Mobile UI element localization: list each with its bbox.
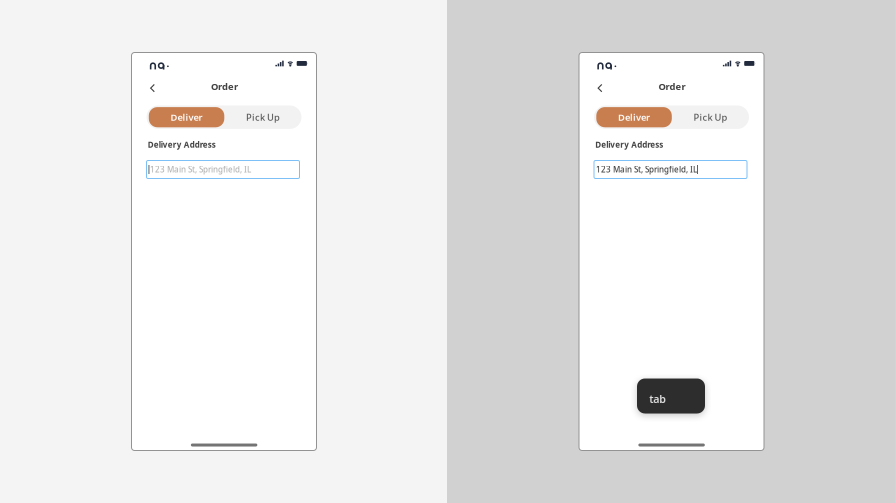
staticText: Pick Up <box>693 111 727 123</box>
staticText: 123 Main St, Springfield, IL <box>150 164 251 175</box>
button[interactable]: 123 Main St, Springfield, IL <box>594 160 747 178</box>
staticText: Pick Up <box>246 111 280 123</box>
button[interactable]: Back <box>144 80 160 96</box>
staticText: Order <box>658 80 685 92</box>
staticText: Deliver <box>171 111 203 123</box>
staticText: tab <box>649 392 666 406</box>
staticText: Delivery Address <box>595 139 663 150</box>
button[interactable]: Pick Up <box>224 107 301 127</box>
button[interactable]: 123 Main St, Springfield, IL <box>146 160 299 178</box>
staticText: Deliver <box>618 111 650 123</box>
button[interactable]: Deliver <box>596 107 672 127</box>
staticText: Delivery Address <box>148 139 216 150</box>
button[interactable]: Pick Up <box>672 107 749 127</box>
staticText: Order <box>211 80 238 92</box>
button[interactable]: Deliver <box>149 107 224 127</box>
button[interactable]: Back <box>592 80 608 96</box>
staticText: 123 Main St, Springfield, IL <box>596 164 697 175</box>
